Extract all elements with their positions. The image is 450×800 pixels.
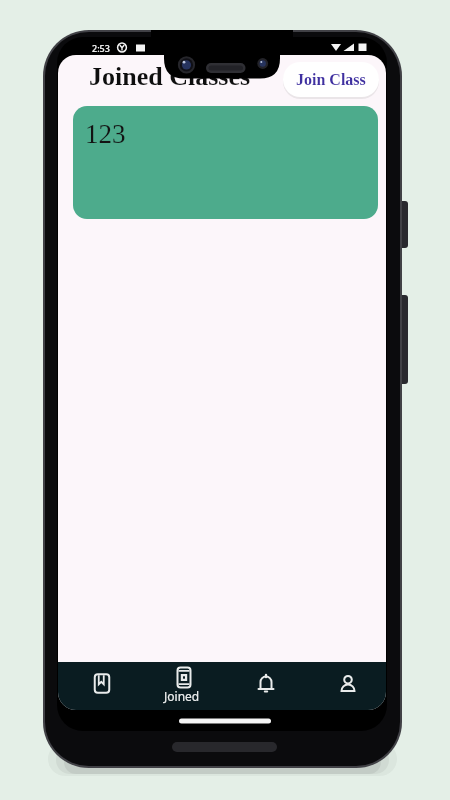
button[interactable]	[304, 662, 386, 710]
staticText: 123	[85, 119, 126, 149]
button[interactable]	[222, 662, 304, 710]
button[interactable]: Join Class	[283, 62, 379, 97]
button[interactable]	[58, 662, 140, 710]
staticText: Join Class	[296, 71, 366, 89]
staticText: Joined Classes	[89, 62, 251, 91]
staticText: 2:53	[92, 42, 110, 54]
button[interactable]: Joined	[140, 662, 222, 710]
button[interactable]: 123	[73, 106, 378, 219]
staticText: Joined	[164, 688, 200, 704]
